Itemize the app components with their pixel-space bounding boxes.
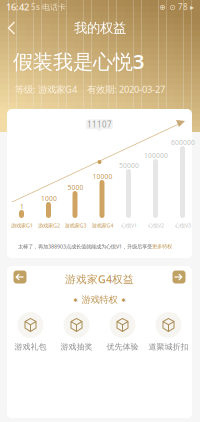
staticText: 5s 电话卡 [29, 2, 66, 12]
staticText: 更多特权 [152, 243, 172, 250]
staticText: 11107 [87, 119, 112, 130]
staticText: 心悦V3 [175, 222, 191, 229]
staticText: 心悦V1 [121, 222, 137, 229]
staticText: 等级: 游戏家G4 [15, 83, 77, 95]
staticText: 100000 [144, 151, 168, 160]
staticText: 游戏礼包 [14, 342, 46, 352]
staticText: ◆ [73, 297, 77, 303]
staticText: 太棒了，再加388903点成长值就能成为心悦V1，升级后享受 [18, 243, 152, 250]
staticText: ◆ [121, 297, 125, 303]
staticText: 假装我是心悦3 [13, 48, 144, 75]
staticText: 游戏家G1 [11, 222, 33, 229]
staticText: ⊕ ⊙ 78 ▸ [159, 2, 194, 12]
staticText: 1000 [41, 194, 57, 203]
staticText: 游戏特权 [81, 294, 117, 305]
button[interactable]: 下一等级 [170, 268, 188, 286]
staticText: 道聚城折扣 [148, 342, 188, 352]
staticText: 10000 [92, 172, 112, 181]
button[interactable]: 返回 [0, 16, 24, 40]
staticText: 游戏家G2 [38, 222, 60, 229]
staticText: 游戏家G4 [91, 222, 113, 229]
staticText: 600000 [171, 138, 195, 147]
button[interactable]: 游戏礼包 [7, 312, 53, 352]
button[interactable]: 优先体验 [99, 312, 145, 352]
button[interactable]: 游戏抽奖 [53, 312, 99, 352]
staticText: 游戏家G4权益 [65, 272, 134, 286]
staticText: 16:42 [6, 1, 29, 13]
staticText: 优先体验 [106, 342, 138, 352]
staticText: 我的权益 [74, 20, 126, 36]
staticText: 1 [20, 202, 24, 211]
staticText: 5000 [67, 183, 83, 192]
staticText: 游戏抽奖 [60, 342, 92, 352]
button[interactable]: 上一等级 [11, 268, 29, 286]
button[interactable]: 道聚城折扣 [145, 312, 191, 352]
staticText: 有效期: 2020-03-27 [87, 83, 165, 95]
staticText: 50000 [119, 161, 139, 170]
staticText: 游戏家G3 [64, 222, 86, 229]
staticText: 心悦V2 [148, 222, 164, 229]
